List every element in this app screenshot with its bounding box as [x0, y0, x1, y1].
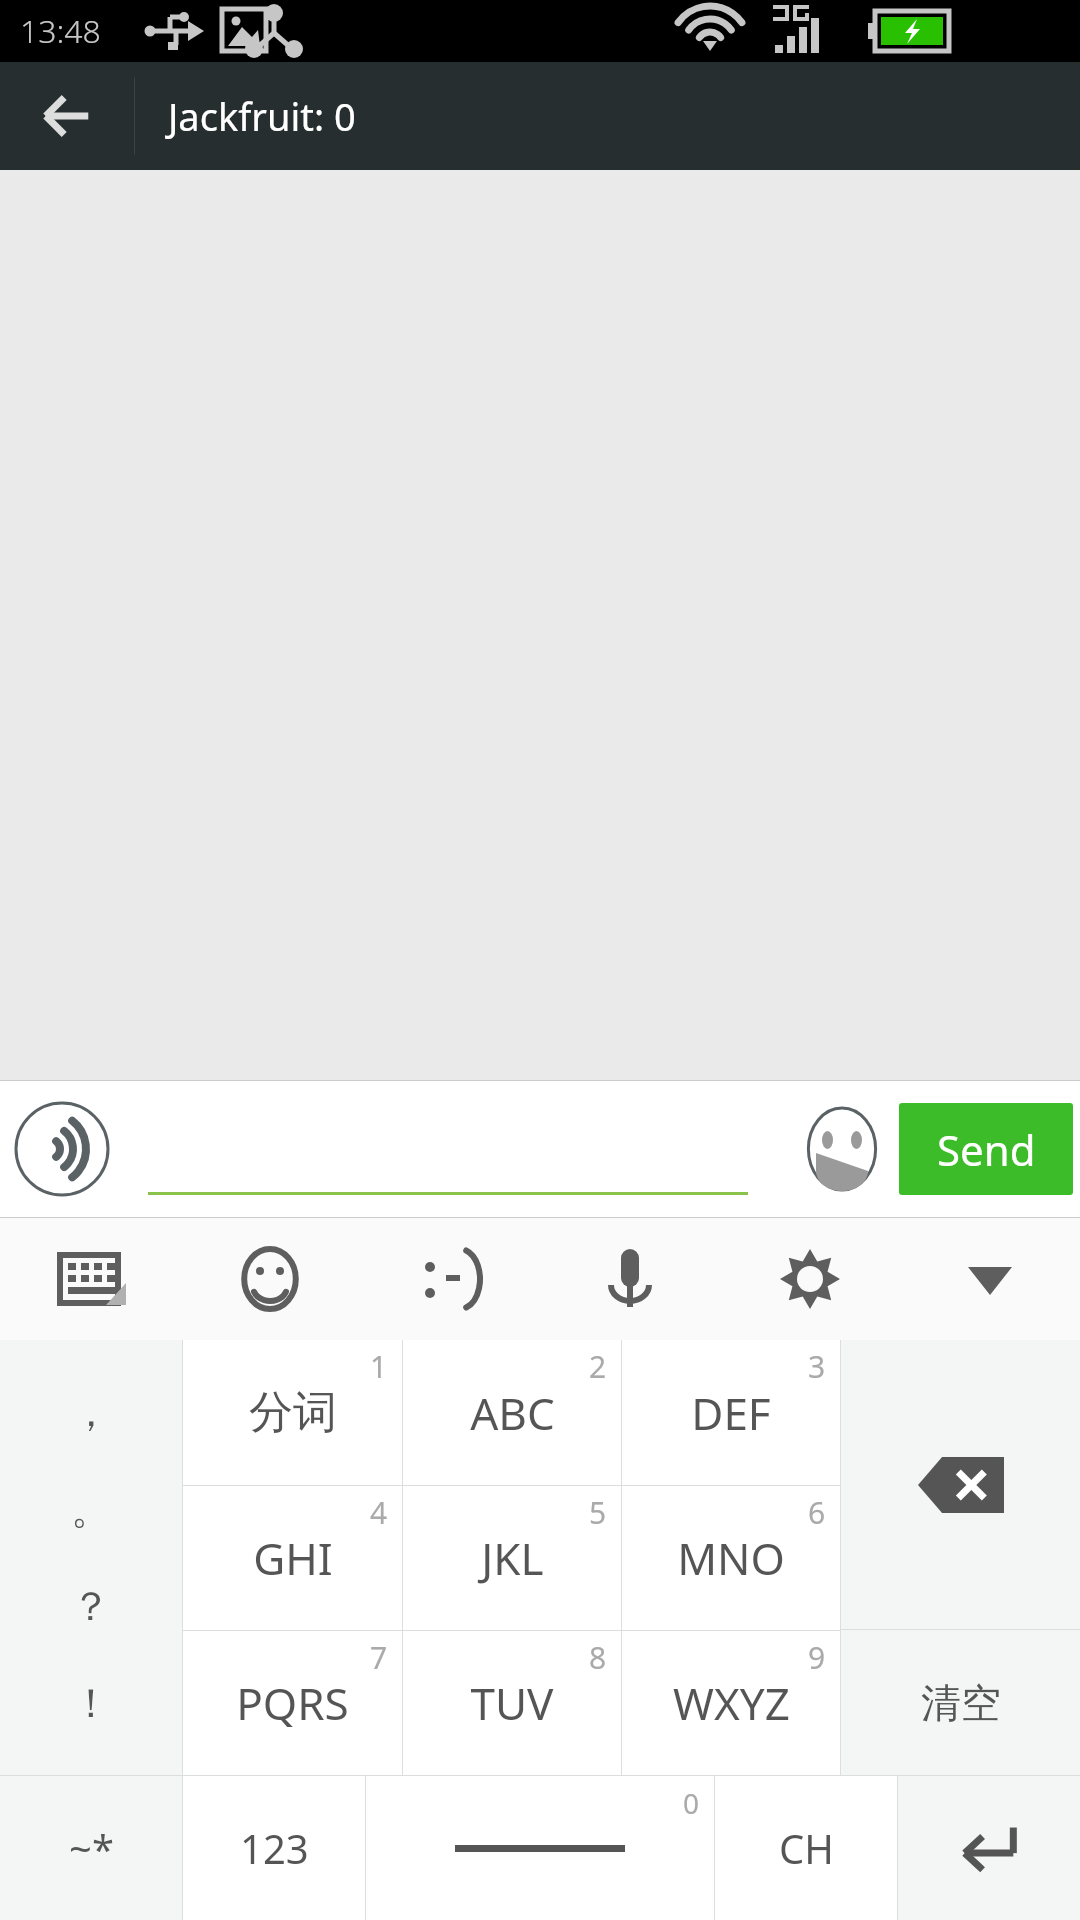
button[interactable]: Enter	[898, 1776, 1080, 1920]
button[interactable]: Backspace	[841, 1340, 1080, 1629]
button[interactable]: 5	[403, 1486, 621, 1630]
staticText: GHI	[253, 1528, 333, 1588]
staticText: 5	[589, 1492, 607, 1533]
button[interactable]: 9	[622, 1631, 840, 1775]
staticText: 123	[240, 1821, 309, 1875]
button[interactable]: Voice input	[10, 1097, 114, 1201]
button[interactable]: Back	[0, 62, 134, 170]
button[interactable]: Settings	[720, 1218, 900, 1340]
staticText: 3	[808, 1346, 826, 1387]
staticText: CH	[779, 1821, 834, 1875]
staticText: ~*	[69, 1821, 114, 1875]
button[interactable]: 清空	[841, 1630, 1080, 1775]
button[interactable]	[148, 1081, 748, 1217]
staticText: 8	[589, 1637, 607, 1678]
button[interactable]: Emoji	[180, 1218, 360, 1340]
staticText: 9	[808, 1637, 826, 1678]
staticText: 13:48	[20, 9, 101, 53]
staticText: 6	[808, 1492, 826, 1533]
staticText: WXYZ	[673, 1673, 790, 1733]
staticText: PQRS	[236, 1673, 349, 1733]
staticText: JKL	[481, 1528, 544, 1588]
staticText: TUV	[470, 1673, 554, 1733]
staticText: MNO	[677, 1528, 785, 1588]
button[interactable]: Punctuation	[0, 1340, 182, 1775]
button[interactable]: CH	[715, 1776, 897, 1920]
staticText: 0	[683, 1784, 700, 1822]
button[interactable]: Send	[899, 1103, 1073, 1195]
staticText: ？	[71, 1581, 111, 1631]
button[interactable]: 2	[403, 1340, 621, 1485]
button[interactable]: Hide keyboard	[900, 1218, 1080, 1340]
button[interactable]: 123	[183, 1776, 365, 1920]
button[interactable]: Voice typing	[540, 1218, 720, 1340]
button[interactable]: 3	[622, 1340, 840, 1485]
staticText: 。	[71, 1484, 111, 1534]
staticText: 2	[589, 1346, 607, 1387]
staticText: ，	[71, 1387, 111, 1437]
staticText: Send	[937, 1121, 1036, 1178]
button[interactable]: 6	[622, 1486, 840, 1630]
staticText: 分词	[249, 1385, 337, 1440]
button[interactable]: Emoji	[794, 1101, 890, 1197]
button[interactable]: ~*	[0, 1776, 182, 1920]
staticText: 1	[370, 1346, 388, 1387]
button[interactable]: Space	[366, 1776, 714, 1920]
staticText: ABC	[470, 1383, 555, 1443]
button[interactable]: Emoticons	[360, 1218, 540, 1340]
button[interactable]: 1	[183, 1340, 402, 1485]
staticText: DEF	[691, 1383, 771, 1443]
button[interactable]: 4	[183, 1486, 402, 1630]
staticText: 清空	[921, 1678, 1001, 1728]
button[interactable]: Keyboard layout	[0, 1218, 180, 1340]
staticText: Jackfruit: 0	[168, 90, 356, 142]
button[interactable]: 8	[403, 1631, 621, 1775]
staticText: 7	[370, 1637, 388, 1678]
button[interactable]: 7	[183, 1631, 402, 1775]
staticText: ！	[71, 1678, 111, 1728]
staticText: 4	[370, 1492, 388, 1533]
